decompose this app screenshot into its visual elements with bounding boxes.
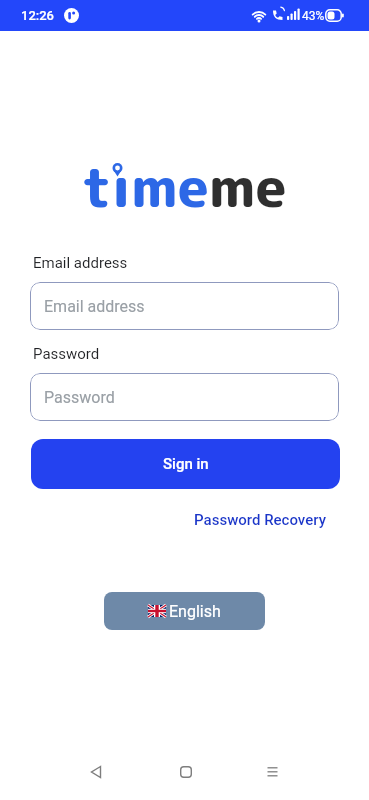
button[interactable]: Password [30, 373, 339, 421]
staticText: Password [44, 388, 115, 407]
button[interactable]: Sign in [31, 439, 340, 489]
staticText: Password [33, 345, 100, 363]
staticText: Email address [33, 254, 128, 272]
button[interactable] [260, 760, 284, 784]
button[interactable]: Password Recovery [194, 511, 326, 529]
staticText: Sign in [163, 455, 209, 473]
button[interactable]: English [104, 592, 265, 630]
button[interactable] [84, 760, 108, 784]
button[interactable]: Email address [30, 282, 339, 330]
button[interactable] [174, 760, 198, 784]
staticText: tımeme [82, 148, 287, 225]
staticText: 43% [302, 9, 325, 23]
staticText: English [169, 602, 221, 621]
staticText: Email address [44, 297, 145, 316]
staticText: 12:26 [21, 8, 55, 23]
